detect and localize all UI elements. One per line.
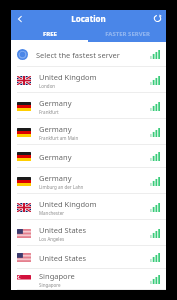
staticText: United Kingdom	[39, 199, 97, 209]
staticText: Los Angeles	[39, 236, 65, 242]
staticText: Germany	[39, 98, 72, 108]
button[interactable]: United Kingdom	[11, 67, 166, 93]
button[interactable]: Back	[11, 10, 28, 27]
staticText: Location	[71, 13, 106, 24]
button[interactable]: Germany	[11, 93, 166, 119]
staticText: Select the fastest server	[36, 50, 150, 60]
button[interactable]: Germany	[11, 168, 166, 194]
button[interactable]: United Kingdom	[11, 194, 166, 220]
staticText: Frankfurt	[39, 109, 59, 115]
staticText: United Kingdom	[39, 72, 97, 82]
staticText: Limburg an der Lahn	[39, 184, 84, 190]
button[interactable]: Germany	[11, 145, 166, 168]
button[interactable]: Refresh	[149, 10, 166, 27]
button[interactable]: Germany	[11, 119, 166, 145]
button[interactable]: FREE	[11, 27, 88, 40]
staticText: FASTER SERVER	[105, 30, 150, 38]
staticText: Germany	[39, 152, 72, 162]
staticText: Singapore	[39, 271, 75, 281]
button[interactable]: Singapore	[11, 269, 166, 290]
staticText: Germany	[39, 173, 72, 183]
staticText: Frankfurt am Main	[39, 135, 79, 141]
staticText: FREE	[43, 30, 57, 38]
staticText: Singapore	[39, 282, 61, 288]
staticText: Manchester	[39, 210, 65, 216]
staticText: United States	[39, 225, 87, 235]
staticText: London	[39, 83, 56, 89]
button[interactable]: United States	[11, 246, 166, 269]
button[interactable]: FASTER SERVER	[88, 27, 166, 40]
button[interactable]: United States	[11, 220, 166, 246]
staticText: Germany	[39, 124, 72, 134]
button[interactable]: Select the fastest server	[11, 42, 166, 67]
staticText: United States	[39, 253, 87, 263]
